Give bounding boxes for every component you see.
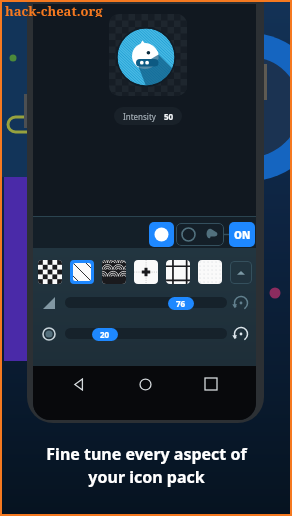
button[interactable]: Outline shape	[177, 223, 200, 246]
button[interactable]: Pattern 4	[134, 260, 158, 284]
button[interactable]: Pattern 6	[198, 260, 222, 284]
button[interactable]: Reset	[230, 323, 252, 345]
button[interactable]: Slider 76	[65, 297, 227, 308]
staticText: ON	[234, 228, 251, 242]
button[interactable]: Icon preview	[109, 14, 187, 96]
button[interactable]: Recent apps	[189, 370, 233, 398]
button[interactable]: Intensity	[114, 107, 182, 125]
staticText: 76	[176, 298, 186, 309]
button[interactable]: Reset	[230, 292, 252, 314]
staticText: hack-cheat.org	[5, 2, 103, 17]
staticText: 20	[100, 329, 110, 340]
button[interactable]: More patterns	[230, 261, 252, 284]
button[interactable]: Icon shape	[200, 223, 223, 246]
button[interactable]: Pattern 3	[102, 260, 126, 284]
button[interactable]: Solid shape	[149, 222, 174, 247]
button[interactable]: Home	[123, 370, 167, 398]
button[interactable]: Back	[56, 370, 100, 398]
staticText: Intensity	[123, 111, 156, 122]
button[interactable]: Pattern 5	[166, 260, 190, 284]
staticText: Fine tune every aspect of your icon pack	[46, 443, 247, 488]
staticText: 50	[164, 111, 174, 122]
button[interactable]: Slider 20	[65, 328, 227, 339]
button[interactable]: ON	[229, 222, 255, 247]
button[interactable]: Pattern 2	[73, 263, 91, 281]
button[interactable]: Pattern 1	[38, 260, 62, 284]
